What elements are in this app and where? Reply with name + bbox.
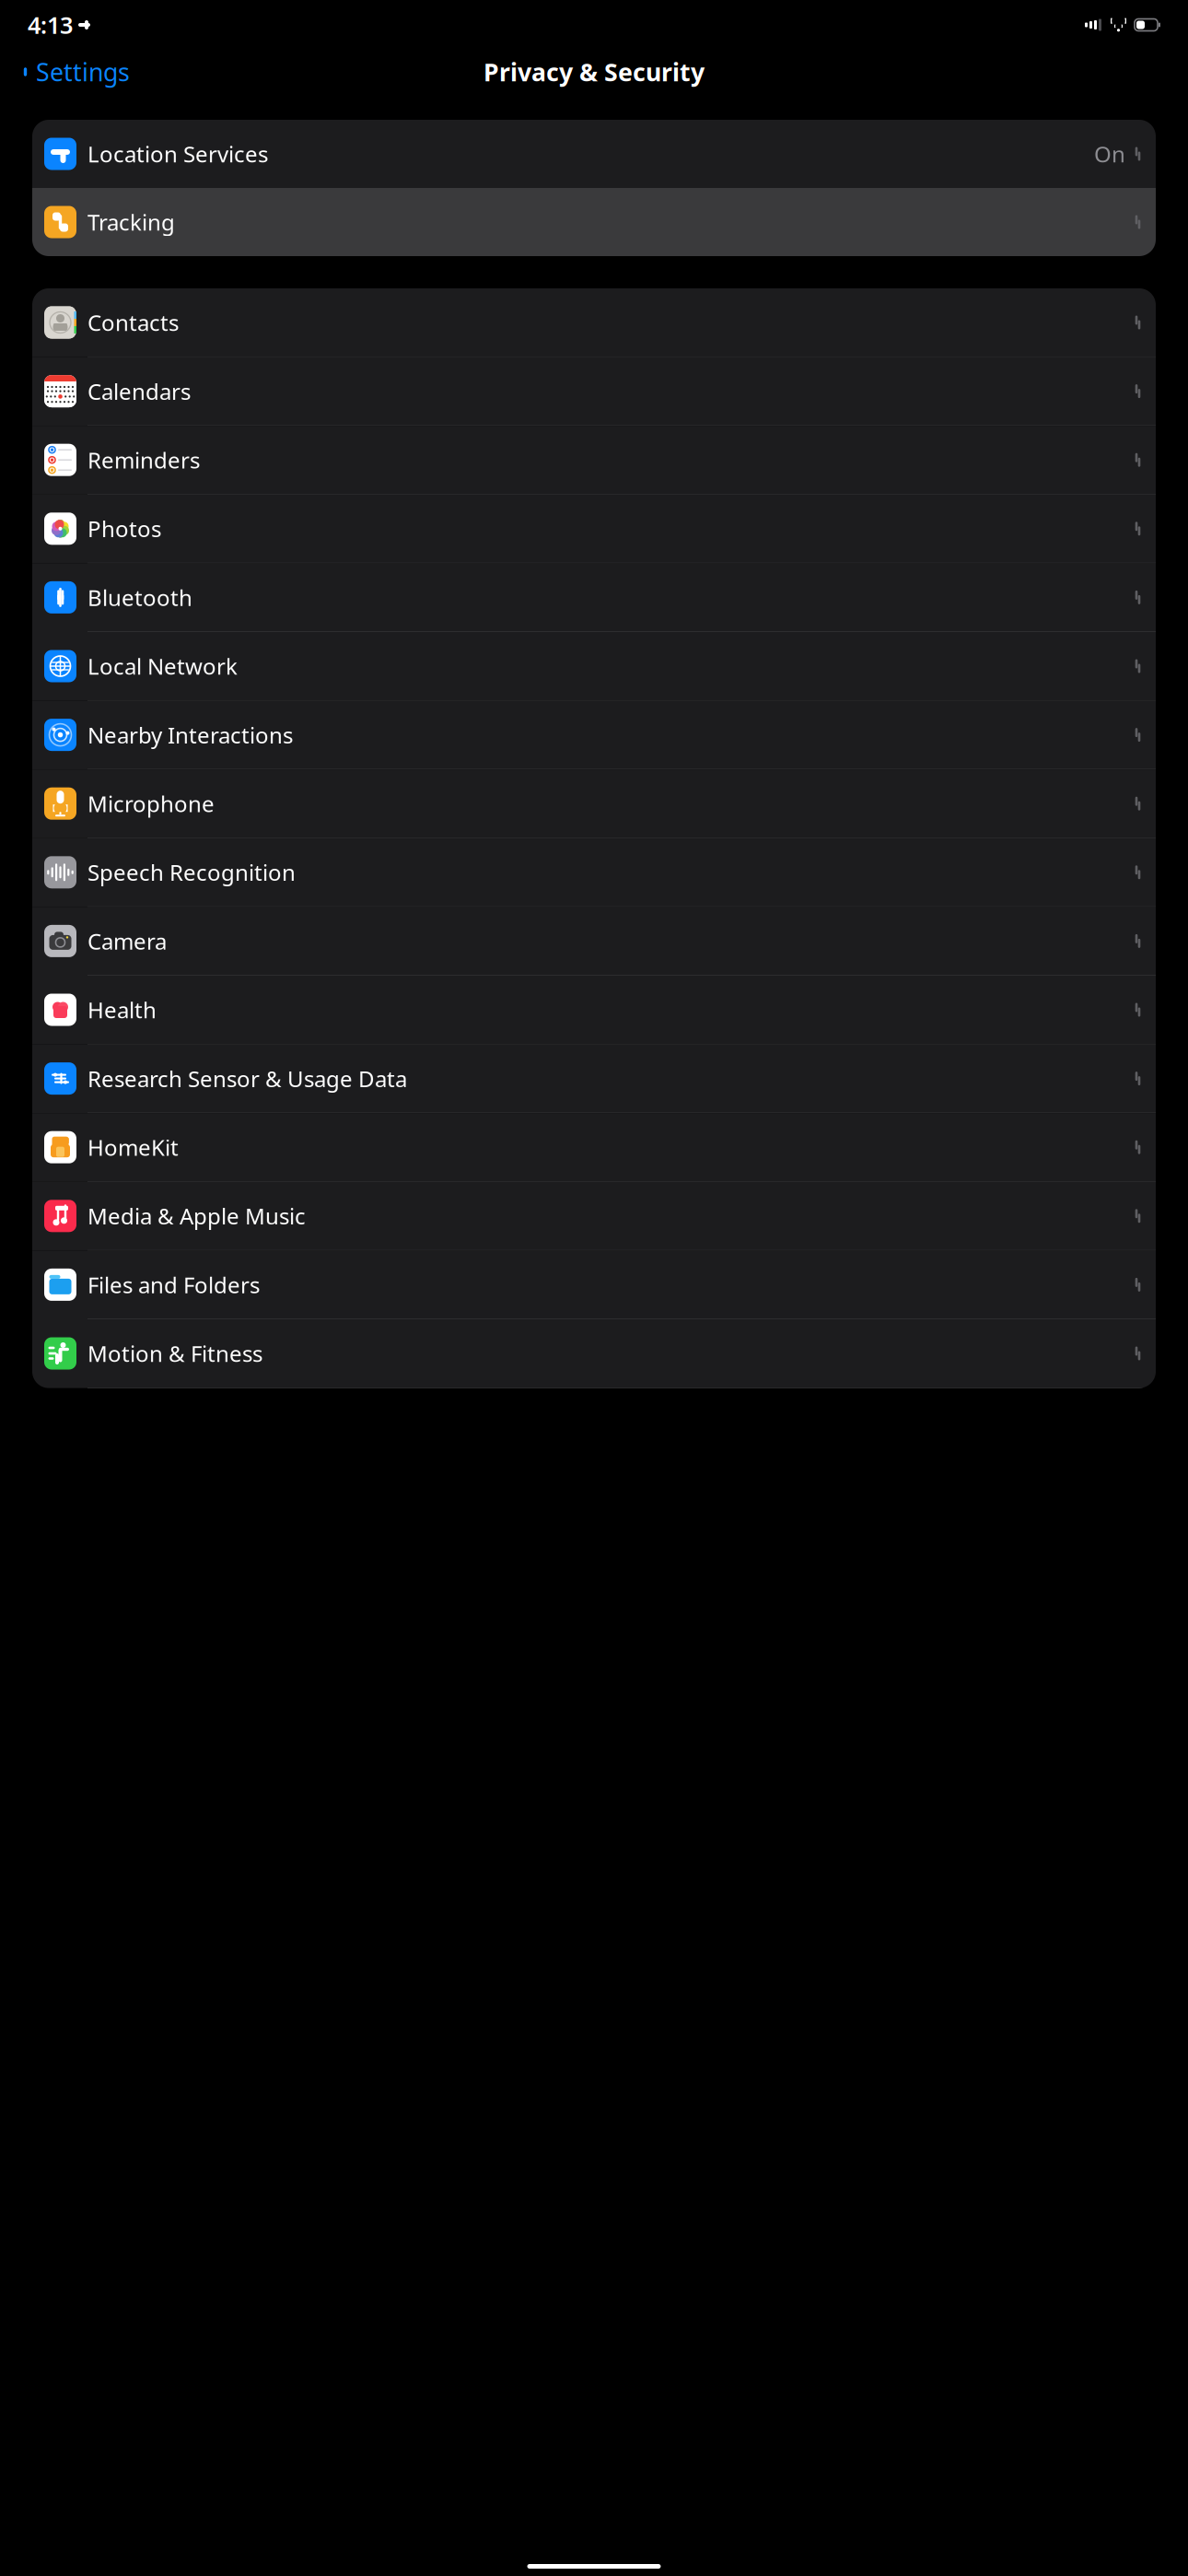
- staticText: On: [1094, 139, 1125, 169]
- staticText: Privacy & Security: [483, 56, 705, 88]
- staticText: Camera: [87, 926, 167, 956]
- staticText: Files and Folders: [87, 1270, 260, 1299]
- staticText: Nearby Interactions: [87, 720, 293, 750]
- button[interactable]: Calendars: [32, 357, 1156, 426]
- button[interactable]: Local Network: [32, 632, 1156, 701]
- button[interactable]: Media & Apple Music: [32, 1182, 1156, 1251]
- staticText: Settings: [36, 56, 130, 88]
- button[interactable]: Tracking: [32, 188, 1156, 256]
- button[interactable]: Photos: [32, 495, 1156, 563]
- staticText: Contacts: [87, 308, 179, 337]
- staticText: Local Network: [87, 651, 238, 681]
- staticText: Bluetooth: [87, 583, 192, 612]
- staticText: Tracking: [87, 207, 175, 237]
- staticText: 4:13: [28, 9, 73, 40]
- staticText: Reminders: [87, 445, 200, 475]
- staticText: Location Services: [87, 139, 268, 169]
- staticText: Health: [87, 995, 157, 1025]
- staticText: Microphone: [87, 789, 215, 818]
- button[interactable]: Speech Recognition: [32, 838, 1156, 907]
- button[interactable]: Nearby Interactions: [32, 701, 1156, 769]
- staticText: Photos: [87, 514, 161, 543]
- button[interactable]: Reminders: [32, 426, 1156, 495]
- button[interactable]: Settings: [7, 48, 130, 96]
- staticText: HomeKit: [87, 1133, 179, 1162]
- staticText: Research Sensor & Usage Data: [87, 1064, 407, 1093]
- button[interactable]: Motion & Fitness: [32, 1319, 1156, 1388]
- staticText: Speech Recognition: [87, 858, 296, 887]
- button[interactable]: HomeKit: [32, 1113, 1156, 1182]
- button[interactable]: Health: [32, 976, 1156, 1044]
- button[interactable]: Bluetooth: [32, 563, 1156, 632]
- button[interactable]: Location Services: [32, 120, 1156, 188]
- button[interactable]: Microphone: [32, 769, 1156, 838]
- button[interactable]: Camera: [32, 907, 1156, 976]
- button[interactable]: Contacts: [32, 288, 1156, 357]
- button[interactable]: Research Sensor & Usage Data: [32, 1044, 1156, 1113]
- button[interactable]: Files and Folders: [32, 1251, 1156, 1319]
- staticText: Media & Apple Music: [87, 1201, 306, 1231]
- staticText: Calendars: [87, 377, 191, 406]
- staticText: Motion & Fitness: [87, 1339, 262, 1368]
